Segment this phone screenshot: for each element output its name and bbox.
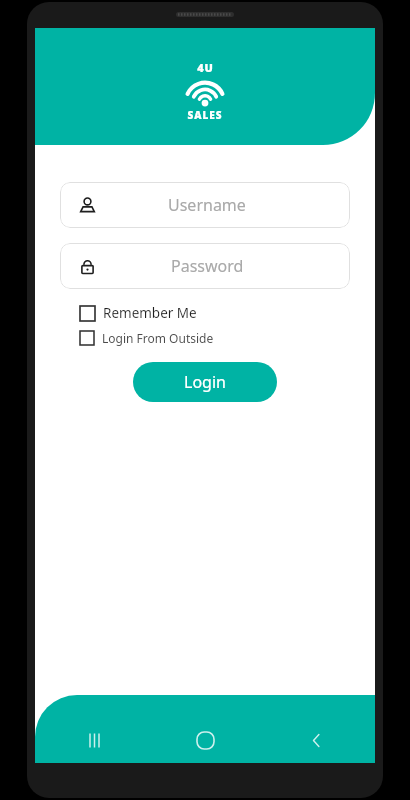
button[interactable]: Home (188, 723, 222, 757)
staticText: 4U (197, 60, 214, 75)
staticText: Login (184, 371, 226, 393)
button[interactable]: Back (299, 723, 333, 757)
button[interactable]: Password field (60, 243, 350, 289)
staticText: Login From Outside (102, 330, 214, 346)
button[interactable]: Username field (60, 182, 350, 228)
button[interactable]: Recent apps (77, 723, 111, 757)
button[interactable]: Remember Me (80, 304, 197, 322)
staticText: SALES (187, 108, 223, 122)
button[interactable]: Login From Outside (80, 330, 214, 346)
staticText: Password (171, 255, 244, 277)
staticText: Remember Me (103, 304, 197, 322)
button[interactable]: Login (133, 362, 277, 402)
staticText: Username (168, 194, 246, 216)
